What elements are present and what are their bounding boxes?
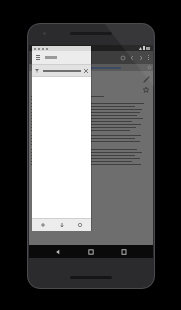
button[interactable]: Home [84,245,98,258]
button[interactable]: Recents [117,245,131,258]
button[interactable]: Sync [72,219,88,231]
button[interactable]: Close tab [32,65,91,76]
other: Close tab [84,69,88,73]
button[interactable]: Download [54,219,70,231]
button[interactable]: Back [51,245,65,258]
button[interactable]: New tab [35,219,51,231]
button[interactable] [32,51,91,64]
